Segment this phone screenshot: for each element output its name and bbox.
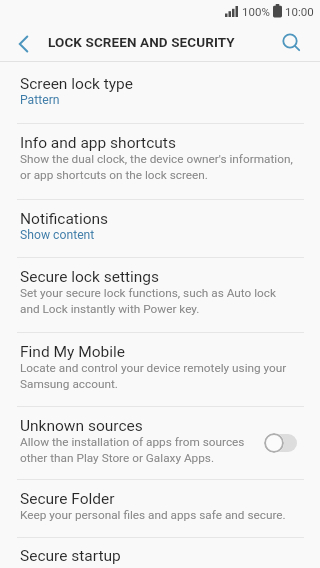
button[interactable]: Screen lock type (0, 62, 320, 123)
button[interactable] (280, 22, 320, 61)
button[interactable]: Secure startup (0, 538, 320, 565)
button[interactable]: Unknown sources (0, 407, 320, 479)
staticText: Show content (20, 228, 95, 242)
button[interactable] (0, 22, 44, 61)
staticText: 100% (242, 5, 270, 18)
staticText: Pattern (20, 93, 60, 107)
staticText: Allow the installation of apps from sour… (20, 435, 245, 465)
staticText: Screen lock type (20, 75, 134, 93)
staticText: Show the dual clock, the device owner's … (20, 152, 293, 182)
staticText: Set your secure lock functions, such as … (20, 286, 276, 316)
button[interactable]: Secure Folder (0, 480, 320, 537)
staticText: Locate and control your device remotely … (20, 361, 287, 391)
staticText: Unknown sources (20, 417, 143, 435)
staticText: Info and app shortcuts (20, 134, 176, 152)
staticText: Secure lock settings (20, 268, 160, 286)
staticText: 10:00 (285, 5, 314, 18)
staticText: Secure startup (20, 547, 121, 565)
button[interactable]: Info and app shortcuts (0, 124, 320, 199)
staticText: Notifications (20, 210, 109, 228)
staticText: Secure Folder (20, 490, 115, 508)
staticText: Find My Mobile (20, 343, 126, 361)
button[interactable]: Secure lock settings (0, 258, 320, 332)
button[interactable]: Notifications (0, 200, 320, 257)
staticText: Keep your personal files and apps safe a… (20, 508, 286, 522)
button[interactable]: Find My Mobile (0, 333, 320, 406)
staticText: LOCK SCREEN AND SECURITY (48, 34, 280, 50)
